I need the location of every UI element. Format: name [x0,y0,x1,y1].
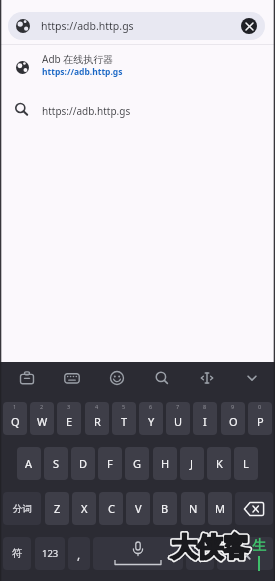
staticText: 0 [258,403,262,410]
button[interactable]: 5 [112,402,136,435]
button[interactable]: B [153,492,177,525]
staticText: , [77,546,81,562]
staticText: Adb 在线执行器 [42,52,114,66]
button[interactable] [60,366,84,390]
staticText: 4 [95,403,99,410]
button[interactable]: 符 [3,537,31,570]
button[interactable] [15,366,39,390]
staticText: H [161,456,170,471]
staticText: 123 [42,547,59,560]
button[interactable]: L [234,447,258,480]
staticText: X [81,501,88,516]
button[interactable]: V [126,492,150,525]
button[interactable]: 分词 [3,492,41,525]
button[interactable]: https://adb.http.gs [8,12,265,40]
button[interactable]: F [98,447,122,480]
staticText: G [133,456,142,471]
staticText: D [79,456,88,471]
button[interactable] [241,18,257,34]
staticText: Q [11,414,20,429]
staticText: 5 [122,403,126,410]
button[interactable] [235,492,273,525]
staticText: O [229,414,238,429]
button[interactable]: D [71,447,95,480]
staticText: 3 [67,403,71,410]
staticText: S [53,456,60,471]
staticText: K [216,456,223,471]
staticText: J [190,456,194,471]
staticText: 生 [252,537,266,555]
staticText: 7 [176,403,180,410]
button[interactable]: S [44,447,68,480]
staticText: A [25,456,33,471]
staticText: B [161,501,169,516]
staticText: V [135,501,142,516]
staticText: Y [148,414,155,429]
staticText: 6 [149,403,153,410]
staticText: W [37,414,48,429]
button[interactable]: G [125,447,149,480]
button[interactable]: A [17,447,41,480]
staticText: M [215,501,225,516]
button[interactable]: C [99,492,123,525]
staticText: https://adb.http.gs [42,104,131,118]
staticText: 。 [195,547,206,561]
button[interactable]: Adb 在线执行器 [0,48,275,88]
staticText: 9 [231,403,235,410]
button[interactable]: N [181,492,205,525]
staticText: https://adb.http.gs [41,19,134,33]
staticText: N [189,501,198,516]
button[interactable]: 1 [3,402,27,435]
staticText: R [94,414,101,429]
staticText: https://adb.http.gs [42,66,123,78]
button[interactable]: 3 [57,402,81,435]
button[interactable]: M [208,492,232,525]
staticText: 大侠客 [171,531,249,564]
button[interactable]: 123 [35,537,65,570]
button[interactable] [93,537,183,570]
staticText: U [174,414,183,429]
staticText: L [243,456,249,471]
button[interactable]: 8 [193,402,217,435]
button[interactable]: Z [45,492,69,525]
button[interactable] [150,366,174,390]
button[interactable] [195,366,219,390]
button[interactable]: K [207,447,231,480]
staticText: T [121,414,128,429]
staticText: E [66,414,73,429]
staticText: 8 [203,403,207,410]
staticText: C [108,501,115,516]
staticText: 分词 [13,503,32,515]
button[interactable]: J [180,447,204,480]
button[interactable]: 7 [166,402,190,435]
staticText: 1 [13,403,17,410]
button[interactable]: 9 [221,402,245,435]
button[interactable] [240,366,264,390]
button[interactable]: 0 [248,402,272,435]
staticText: I [203,414,207,429]
staticText: 大侠客 [171,531,249,564]
button[interactable]: 4 [85,402,109,435]
button[interactable]: 2 [30,402,54,435]
staticText: Z [54,501,61,516]
button[interactable]: H [153,447,177,480]
button[interactable] [105,366,129,390]
button[interactable]: X [72,492,96,525]
button[interactable]: https://adb.http.gs [0,96,275,126]
staticText: 2 [40,403,44,410]
button[interactable]: 6 [139,402,163,435]
staticText: P [257,414,264,429]
button[interactable] [217,537,273,570]
button[interactable]: , [68,537,90,570]
button[interactable]: 。 [186,537,214,570]
staticText: F [107,456,113,471]
staticText: 大侠客 [171,531,249,564]
staticText: 符 [12,547,23,560]
